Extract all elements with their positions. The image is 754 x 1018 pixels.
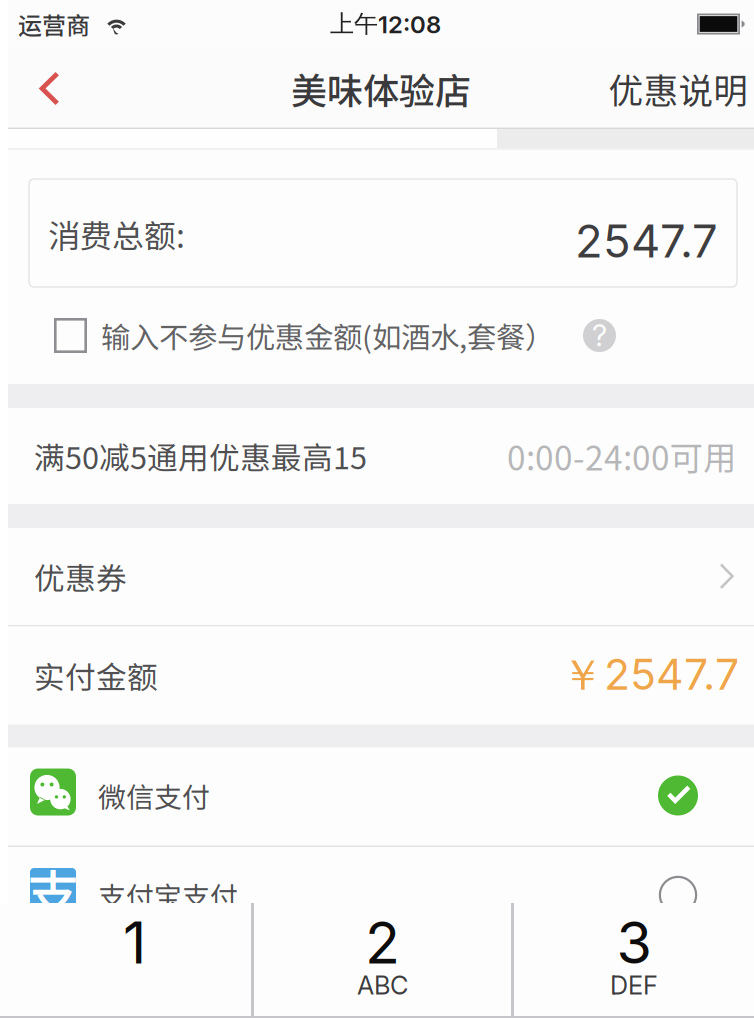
button[interactable]: 微信支付: [8, 747, 754, 845]
button[interactable]: 1: [0, 903, 251, 1018]
staticText: 实付金额: [34, 653, 158, 698]
staticText: ?: [592, 318, 607, 353]
staticText: ￥2547.7: [561, 648, 739, 702]
button[interactable]: 支: [8, 847, 754, 945]
staticText: 上午12:08: [330, 9, 441, 39]
staticText: DEF: [610, 970, 658, 1001]
button[interactable]: 返回: [8, 48, 90, 129]
button[interactable]: 3: [514, 903, 754, 1018]
staticText: 支付宝支付: [98, 875, 238, 915]
staticText: 微信支付: [98, 775, 210, 816]
button[interactable]: 2: [254, 903, 511, 1018]
staticText: 消费总额:: [48, 211, 185, 257]
staticText: 支: [26, 853, 79, 930]
staticText: 运营商: [18, 7, 90, 41]
staticText: ABC: [357, 970, 408, 1001]
staticText: 满50减5通用优惠最高15: [34, 434, 367, 478]
staticText: 优惠说明: [608, 63, 748, 114]
staticText: 1: [123, 908, 146, 977]
staticText: 美味体验店: [291, 62, 471, 114]
staticText: 输入不参与优惠金额(如酒水,套餐）: [101, 314, 554, 357]
button[interactable]: 优惠券: [8, 528, 754, 625]
staticText: 2547.7: [575, 214, 718, 268]
staticText: 3: [616, 908, 651, 977]
button[interactable]: 输入不参与优惠金额(如酒水,套餐）: [8, 287, 754, 384]
staticText: 2: [365, 908, 400, 977]
staticText: 0:00-24:00可用: [507, 432, 736, 480]
button[interactable]: 优惠说明: [603, 48, 754, 129]
staticText: 优惠券: [34, 554, 127, 599]
